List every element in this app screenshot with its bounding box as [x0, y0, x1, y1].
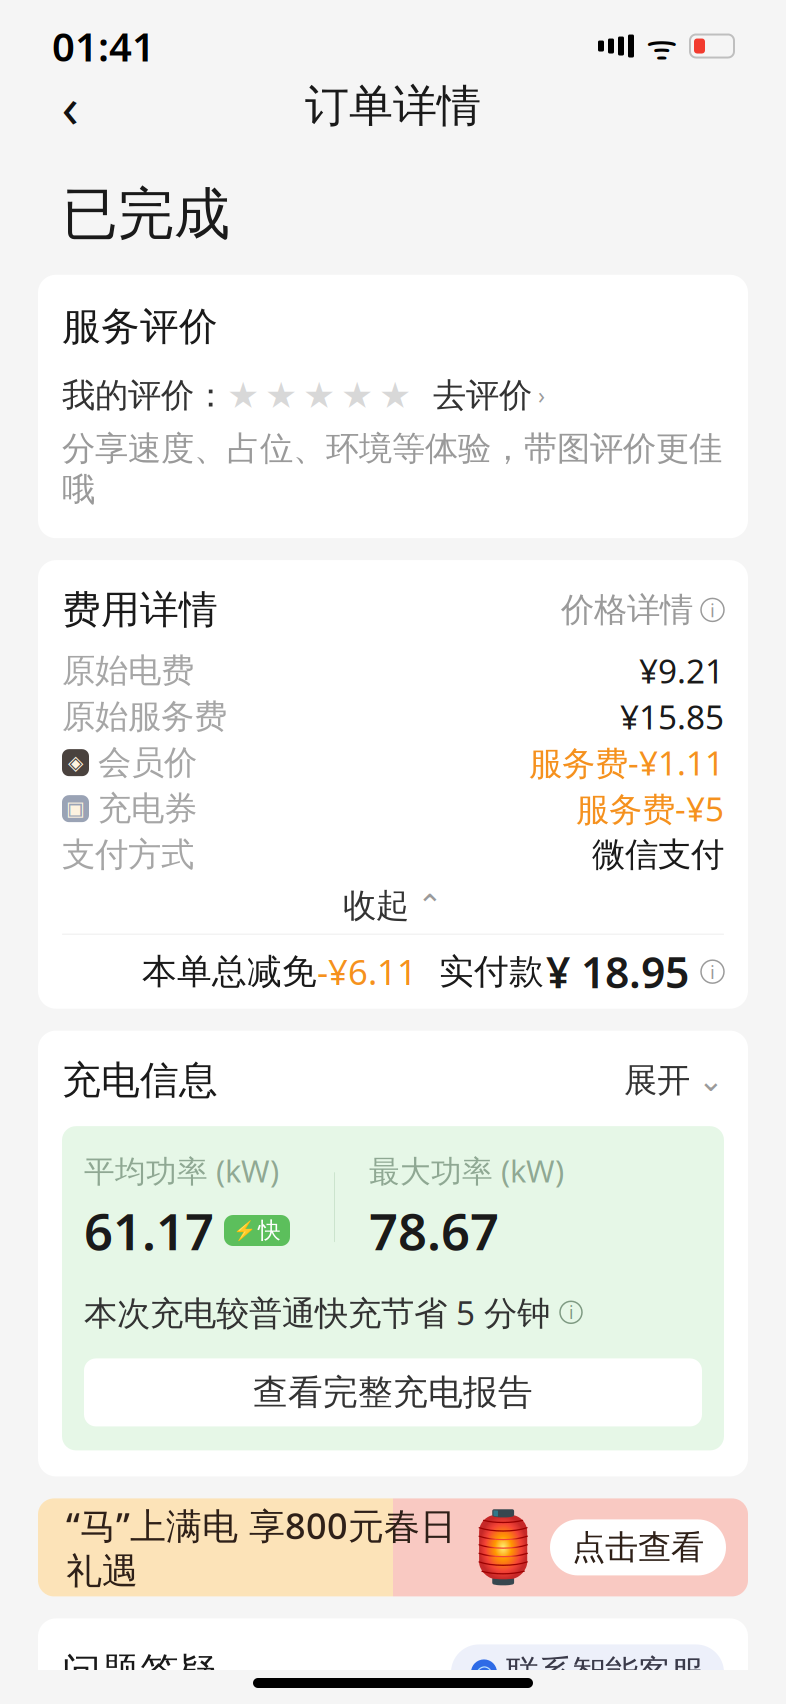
staticText: 服务评价: [62, 303, 218, 350]
staticText: 价格详情: [561, 589, 693, 630]
staticText: 微信支付: [592, 834, 724, 875]
staticText: 已完成: [62, 180, 230, 249]
button[interactable]: Payment info: [689, 960, 724, 983]
staticText: 费用详情: [62, 586, 218, 634]
staticText: ¥15.85: [620, 694, 724, 739]
staticText: 最大功率 (kW): [369, 1150, 564, 1191]
staticText: 服务费-¥1.11: [529, 740, 724, 785]
staticText: 本单总减免: [142, 950, 317, 993]
staticText: 联系智能客服: [506, 1652, 704, 1693]
staticText: ›: [538, 380, 545, 410]
staticText: 点击查看: [572, 1527, 704, 1568]
staticText: 会员价: [98, 742, 197, 783]
staticText: 本次充电较普通快充节省 5 分钟: [84, 1290, 550, 1334]
staticText: ★: [341, 375, 373, 416]
staticText: ᯤ: [646, 23, 678, 69]
staticText: “马”上满电 享800元春日礼遇: [66, 1501, 456, 1593]
staticText: ★: [227, 375, 259, 416]
staticText: i: [710, 597, 715, 622]
staticText: 问题答疑: [62, 1649, 218, 1696]
staticText: -¥6.11: [317, 949, 417, 995]
staticText: i: [569, 1301, 573, 1324]
staticText: 分享速度、占位、环境等体验，带图评价更佳哦: [62, 428, 722, 510]
staticText: ▣: [66, 797, 85, 820]
button[interactable]: Back: [38, 74, 102, 138]
staticText: ⌄: [698, 1063, 724, 1098]
staticText: 实付款: [439, 950, 544, 993]
staticText: 充电信息: [62, 1057, 218, 1104]
staticText: 快: [258, 1217, 281, 1244]
staticText: ¥ 18.95: [546, 943, 689, 1000]
staticText: 01:41: [52, 19, 155, 72]
staticText: 查看完整充电报告: [253, 1371, 533, 1414]
staticText: 原始服务费: [62, 696, 227, 737]
staticText: ¥9.21: [639, 648, 724, 693]
button[interactable]: ◠: [451, 1644, 724, 1700]
staticText: 支付方式: [62, 834, 194, 875]
staticText: 充电券: [98, 788, 197, 829]
staticText: 服务费-¥5: [576, 786, 724, 831]
staticText: 我的评价：: [62, 375, 227, 416]
staticText: 展开: [624, 1060, 690, 1101]
staticText: 🏮: [460, 1508, 546, 1587]
staticText: 61.17: [84, 1197, 214, 1264]
staticText: ◠: [475, 1661, 492, 1684]
staticText: ⚡: [233, 1220, 256, 1241]
staticText: 78.67: [369, 1197, 499, 1264]
staticText: ★: [265, 375, 297, 416]
staticText: ★: [379, 375, 411, 416]
staticText: ◈: [68, 751, 83, 774]
staticText: 平均功率 (kW): [84, 1150, 279, 1191]
staticText: 去评价: [433, 375, 532, 416]
staticText: 订单详情: [305, 79, 481, 133]
staticText: ‹: [61, 69, 78, 143]
staticText: ★: [303, 375, 335, 416]
button[interactable]: 价格详情: [561, 589, 724, 630]
staticText: 收起: [343, 885, 409, 926]
button[interactable]: “马”上满电 享800元春日礼遇: [38, 1498, 748, 1596]
staticText: i: [710, 959, 715, 984]
staticText: ⌃: [417, 888, 443, 923]
staticText: 原始电费: [62, 650, 194, 691]
button[interactable]: 查看完整充电报告: [84, 1358, 702, 1426]
button[interactable]: 收起: [62, 878, 724, 934]
button[interactable]: 我的评价：: [62, 372, 724, 418]
button[interactable]: 展开: [624, 1060, 724, 1101]
